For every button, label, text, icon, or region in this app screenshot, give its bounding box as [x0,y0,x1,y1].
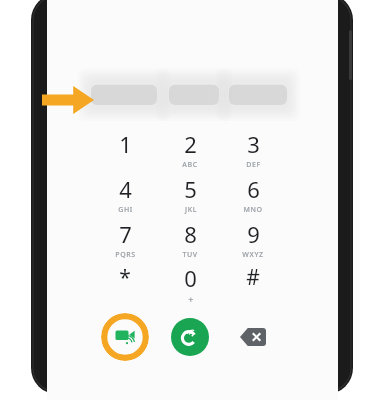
staticText: TUV [182,250,198,260]
button[interactable]: 7 [95,219,155,261]
staticText: 1 [119,129,132,159]
staticText: 9 [247,219,260,249]
staticText: 3 [247,129,260,159]
button[interactable]: Backspace [231,321,275,353]
button[interactable]: Call over Wi-Fi [171,318,209,356]
staticText: GHI [118,205,133,215]
staticText: 8 [184,219,197,249]
staticText: 2 [184,129,197,159]
staticText: ABC [182,160,198,170]
staticText: * [119,263,131,292]
button[interactable]: 8 [160,219,220,261]
staticText: # [246,263,260,292]
staticText: JKL [185,205,197,215]
staticText: 0 [184,263,197,293]
button[interactable]: # [223,263,283,305]
staticText: 6 [247,174,260,204]
staticText: 7 [119,219,132,249]
staticText: 5 [184,174,197,204]
staticText: 4 [119,174,132,204]
button[interactable]: * [95,263,155,305]
button[interactable]: 9 [223,219,283,261]
button[interactable]: 2 [160,129,220,171]
staticText: MNO [243,205,263,215]
button[interactable]: 1 [95,129,155,171]
button[interactable]: 4 [95,174,155,216]
button[interactable]: 3 [223,129,283,171]
staticText: PQRS [115,250,136,260]
button[interactable]: 5 [160,174,220,216]
button[interactable]: Video call over Wi-Fi [101,313,149,361]
staticText: DEF [246,160,261,170]
staticText: WXYZ [242,250,264,260]
staticText: + [188,293,194,305]
button[interactable]: 0 [160,263,220,305]
button[interactable]: 6 [223,174,283,216]
